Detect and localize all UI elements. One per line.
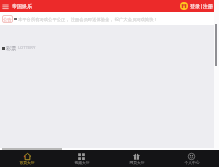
staticText: 个人中心 [184, 160, 200, 165]
button[interactable]: 网页大厅 [109, 150, 164, 167]
button[interactable]: 视频大厅 [54, 150, 109, 167]
button[interactable]: 个人中心 [164, 150, 219, 167]
staticText: 公告 [3, 17, 12, 22]
staticText: 网页大厅 [129, 160, 145, 165]
button[interactable]: 登录|注册 [180, 2, 213, 10]
button[interactable]: 公告 [2, 15, 13, 23]
staticText: 帝国娱乐 [12, 3, 32, 9]
button[interactable]: 首页大厅 [0, 150, 54, 167]
button[interactable]: Menu [2, 3, 9, 10]
staticText: 视频大厅 [74, 160, 90, 165]
staticText: 登录|注册 [190, 3, 213, 10]
staticText: LOTTERY [18, 45, 36, 51]
staticText: 本平台所有游戏公平公正， 注册会员即送体验金， 祝广大会员游戏愉快！ [18, 16, 158, 22]
staticText: 首页大厅 [19, 160, 35, 165]
staticText: 彩票 [6, 45, 16, 51]
